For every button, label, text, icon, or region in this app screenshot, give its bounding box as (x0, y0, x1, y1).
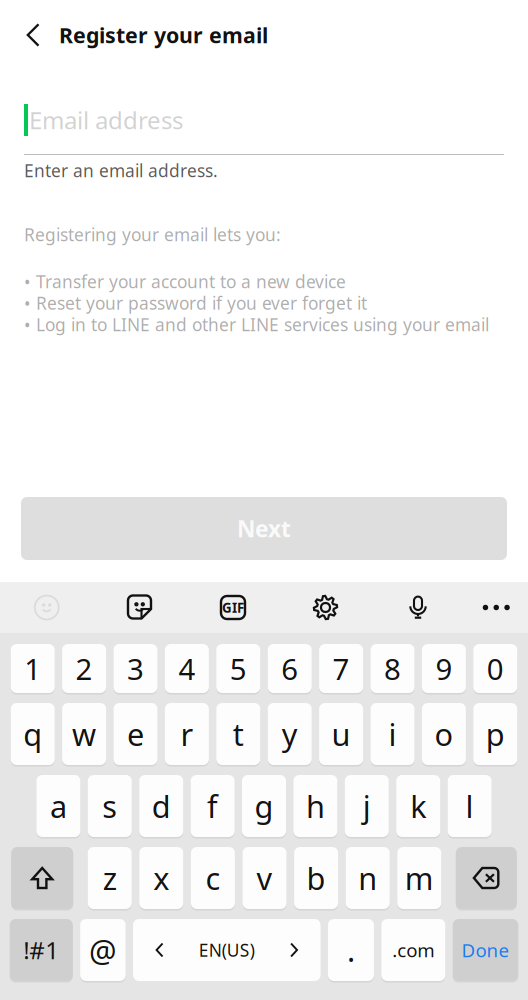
staticText: Enter an email address. (24, 159, 218, 182)
button[interactable]: h (293, 775, 337, 837)
staticText: 9 (435, 649, 452, 688)
button[interactable]: Keyboard settings (279, 582, 371, 633)
staticText: t (233, 714, 244, 754)
button[interactable]: Next (21, 497, 507, 560)
staticText: 4 (178, 649, 195, 688)
staticText: f (207, 786, 218, 826)
button[interactable]: . (328, 919, 374, 981)
button[interactable]: g (242, 775, 286, 837)
staticText: s (102, 786, 117, 826)
button[interactable]: t (216, 703, 260, 765)
button[interactable]: 4 (165, 644, 209, 693)
button[interactable]: 0 (473, 644, 517, 693)
staticText: d (152, 786, 171, 826)
staticText: p (486, 714, 505, 754)
button[interactable]: d (139, 775, 183, 837)
staticText: e (127, 714, 144, 754)
staticText: 6 (281, 649, 298, 688)
button[interactable]: l (448, 775, 492, 837)
staticText: a (50, 786, 67, 826)
button[interactable]: Stickers (93, 582, 186, 633)
staticText: Done (461, 938, 509, 962)
button[interactable]: 1 (11, 644, 55, 693)
button[interactable]: a (36, 775, 80, 837)
staticText: u (332, 714, 351, 754)
button[interactable]: k (396, 775, 440, 837)
staticText: EN(US) (199, 938, 255, 961)
button[interactable]: 8 (370, 644, 414, 693)
button[interactable]: Done (453, 919, 518, 981)
button[interactable]: Shift (11, 847, 73, 909)
staticText: c (205, 858, 220, 898)
staticText: v (256, 858, 272, 898)
staticText: r (180, 714, 193, 754)
button[interactable]: @ (80, 919, 126, 981)
button[interactable]: p (473, 703, 517, 765)
button[interactable]: Change language (133, 919, 321, 981)
button[interactable]: x (139, 847, 183, 909)
staticText: y (282, 714, 298, 754)
staticText: b (307, 858, 326, 898)
staticText: k (410, 786, 426, 826)
button[interactable]: Voice input (371, 582, 464, 633)
staticText: h (306, 786, 325, 826)
button[interactable]: o (422, 703, 466, 765)
button[interactable]: Emoji (0, 582, 93, 633)
staticText: .com (392, 938, 434, 962)
button[interactable]: GIF (186, 582, 279, 633)
button[interactable]: 9 (422, 644, 466, 693)
button[interactable]: .com (381, 919, 445, 981)
button[interactable]: 6 (268, 644, 312, 693)
button[interactable]: c (191, 847, 235, 909)
staticText: GIF (222, 599, 244, 616)
staticText: o (434, 714, 453, 754)
button[interactable]: j (345, 775, 389, 837)
button[interactable]: i (370, 703, 414, 765)
button[interactable]: m (397, 847, 441, 909)
button[interactable]: Backspace (456, 847, 517, 909)
button[interactable]: y (268, 703, 312, 765)
staticText: • Transfer your account to a new device (24, 270, 346, 293)
button[interactable]: 2 (62, 644, 106, 693)
button[interactable]: r (165, 703, 209, 765)
staticText: !#1 (23, 934, 59, 966)
staticText: j (363, 786, 371, 826)
staticText: • Log in to LINE and other LINE services… (24, 313, 489, 336)
staticText: w (72, 714, 96, 754)
staticText: n (358, 858, 377, 898)
button[interactable]: s (88, 775, 132, 837)
staticText: @ (89, 930, 117, 970)
staticText: 0 (487, 649, 504, 688)
button[interactable]: w (62, 703, 106, 765)
button[interactable]: f (191, 775, 235, 837)
staticText: g (254, 786, 273, 826)
button[interactable]: 5 (216, 644, 260, 693)
button[interactable]: u (319, 703, 363, 765)
button[interactable]: e (113, 703, 157, 765)
staticText: 7 (333, 649, 350, 688)
staticText: i (388, 714, 396, 754)
button[interactable]: More (464, 582, 528, 633)
staticText: . (347, 930, 355, 970)
button[interactable]: q (11, 703, 55, 765)
button[interactable]: 3 (113, 644, 157, 693)
staticText: q (23, 714, 42, 754)
button[interactable]: z (88, 847, 132, 909)
button[interactable]: n (346, 847, 390, 909)
button[interactable]: v (242, 847, 286, 909)
staticText: m (405, 858, 434, 898)
button[interactable]: 7 (319, 644, 363, 693)
staticText: Next (237, 513, 291, 543)
button[interactable]: Back (13, 12, 53, 58)
staticText: Registering your email lets you: (24, 223, 281, 246)
staticText: 3 (127, 649, 144, 688)
staticText: Register your email (59, 21, 268, 49)
staticText: • Reset your password if you ever forget… (24, 292, 367, 315)
staticText: l (466, 786, 474, 826)
staticText: 1 (24, 649, 41, 688)
staticText: 5 (230, 649, 247, 688)
staticText: x (153, 858, 169, 898)
staticText: z (103, 858, 117, 898)
button[interactable]: b (294, 847, 338, 909)
button[interactable]: !#1 (10, 919, 73, 981)
